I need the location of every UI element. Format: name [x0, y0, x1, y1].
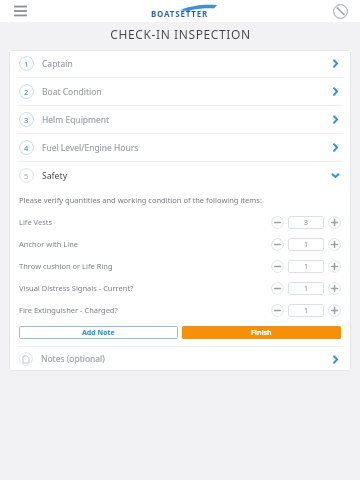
button[interactable]: Finish [182, 326, 341, 339]
staticText: 5 [24, 171, 29, 181]
staticText: 3 [304, 218, 309, 228]
button[interactable]: Decrease [271, 282, 284, 295]
button[interactable]: 3 [288, 216, 324, 229]
button[interactable]: 1 [9, 50, 351, 77]
button[interactable]: Decrease [271, 216, 284, 229]
button[interactable]: Decrease [271, 260, 284, 273]
button[interactable]: 1 [288, 238, 324, 251]
staticText: Visual Distress Signals - Current? [19, 283, 134, 293]
staticText: Fuel Level/Engine Hours [42, 142, 139, 154]
staticText: Finish [251, 328, 272, 338]
staticText: Fire Extinguisher - Charged? [19, 305, 118, 315]
button[interactable]: Increase [328, 216, 341, 229]
staticText: 1 [304, 240, 309, 250]
button[interactable]: Increase [328, 304, 341, 317]
button[interactable]: Notes (optional) [9, 347, 351, 371]
staticText: 1 [304, 262, 309, 272]
staticText: 4 [24, 143, 29, 153]
staticText: 1 [304, 306, 309, 316]
staticText: Boat Condition [42, 86, 102, 98]
button[interactable]: Increase [328, 260, 341, 273]
staticText: Captain [42, 58, 73, 70]
button[interactable]: BOATSETTER [143, 4, 217, 19]
button[interactable]: Menu [10, 1, 30, 21]
button[interactable]: 4 [9, 134, 351, 161]
staticText: Anchor with Line [19, 239, 79, 249]
button[interactable]: Decrease [271, 238, 284, 251]
staticText: Safety [42, 170, 68, 182]
staticText: BOATSETTER [151, 8, 209, 19]
button[interactable]: 1 [288, 304, 324, 317]
button[interactable]: Increase [328, 282, 341, 295]
staticText: CHECK-IN INSPECTION [110, 26, 251, 42]
staticText: Life Vests [19, 217, 53, 227]
staticText: 2 [24, 87, 29, 97]
button[interactable]: Increase [328, 238, 341, 251]
staticText: Helm Equipment [42, 114, 110, 126]
button[interactable]: Add Note [19, 326, 178, 339]
staticText: Notes (optional) [41, 353, 105, 365]
staticText: 1 [304, 284, 309, 294]
staticText: 1 [24, 59, 29, 69]
button[interactable]: 2 [9, 78, 351, 105]
button[interactable]: Call support [330, 1, 350, 21]
button[interactable]: 3 [9, 106, 351, 133]
staticText: Add Note [82, 328, 115, 338]
button[interactable]: 1 [288, 260, 324, 273]
staticText: 3 [24, 115, 29, 125]
button[interactable]: 5 [9, 162, 351, 189]
button[interactable]: Decrease [271, 304, 284, 317]
button[interactable]: 1 [288, 282, 324, 295]
staticText: Throw cushion or Life Ring [19, 261, 113, 271]
staticText: Please verify quantities and working con… [19, 195, 262, 205]
